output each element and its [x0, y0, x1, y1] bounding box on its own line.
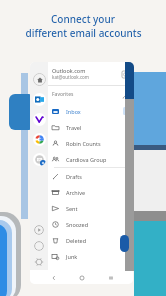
button[interactable]: Home — [33, 73, 46, 86]
staticText: Robin Counts — [66, 140, 130, 147]
staticText: Deleted — [66, 237, 130, 244]
button[interactable]: Account — [33, 113, 46, 126]
button[interactable]: Recent apps — [105, 272, 116, 283]
button[interactable]: Edit favorites — [120, 90, 130, 100]
staticText: Inbox — [66, 108, 123, 115]
button[interactable]: Outlook.com — [48, 62, 133, 85]
staticText: different email accounts — [25, 26, 142, 40]
staticText: Cardiova Group — [66, 156, 130, 163]
button[interactable]: Travel — [48, 119, 133, 135]
button[interactable]: Account — [33, 133, 46, 146]
staticText: Sent — [66, 205, 130, 212]
staticText: kat@outlook.com — [52, 74, 90, 80]
button[interactable]: Inbox — [48, 103, 133, 119]
button[interactable]: Account — [33, 93, 46, 106]
button[interactable]: Settings — [34, 257, 44, 267]
staticText: Outlook.com — [52, 67, 86, 74]
staticText: Snoozed — [66, 221, 130, 228]
staticText: Archive — [66, 189, 127, 196]
button[interactable]: Help — [34, 241, 44, 251]
staticText: Drafts — [66, 173, 130, 180]
button[interactable]: Calendar — [120, 69, 130, 79]
button[interactable]: Junk — [48, 248, 133, 264]
staticText: Favorites — [52, 91, 120, 98]
button[interactable]: Snoozed — [48, 216, 133, 232]
button[interactable]: Play — [34, 225, 44, 235]
button[interactable]: Drafts — [48, 168, 133, 184]
staticText: Junk — [66, 253, 130, 260]
button[interactable]: Archive — [48, 184, 133, 200]
button[interactable]: Account — [33, 153, 46, 166]
staticText: Connect your — [51, 12, 115, 26]
button[interactable]: Cardiova Group — [48, 151, 133, 167]
staticText: Travel — [66, 124, 130, 131]
button[interactable]: Sent — [48, 200, 133, 216]
button[interactable]: Back — [48, 272, 59, 283]
button[interactable]: Home — [76, 272, 87, 283]
button[interactable]: Deleted — [48, 232, 133, 248]
button[interactable]: Robin Counts — [48, 135, 133, 151]
